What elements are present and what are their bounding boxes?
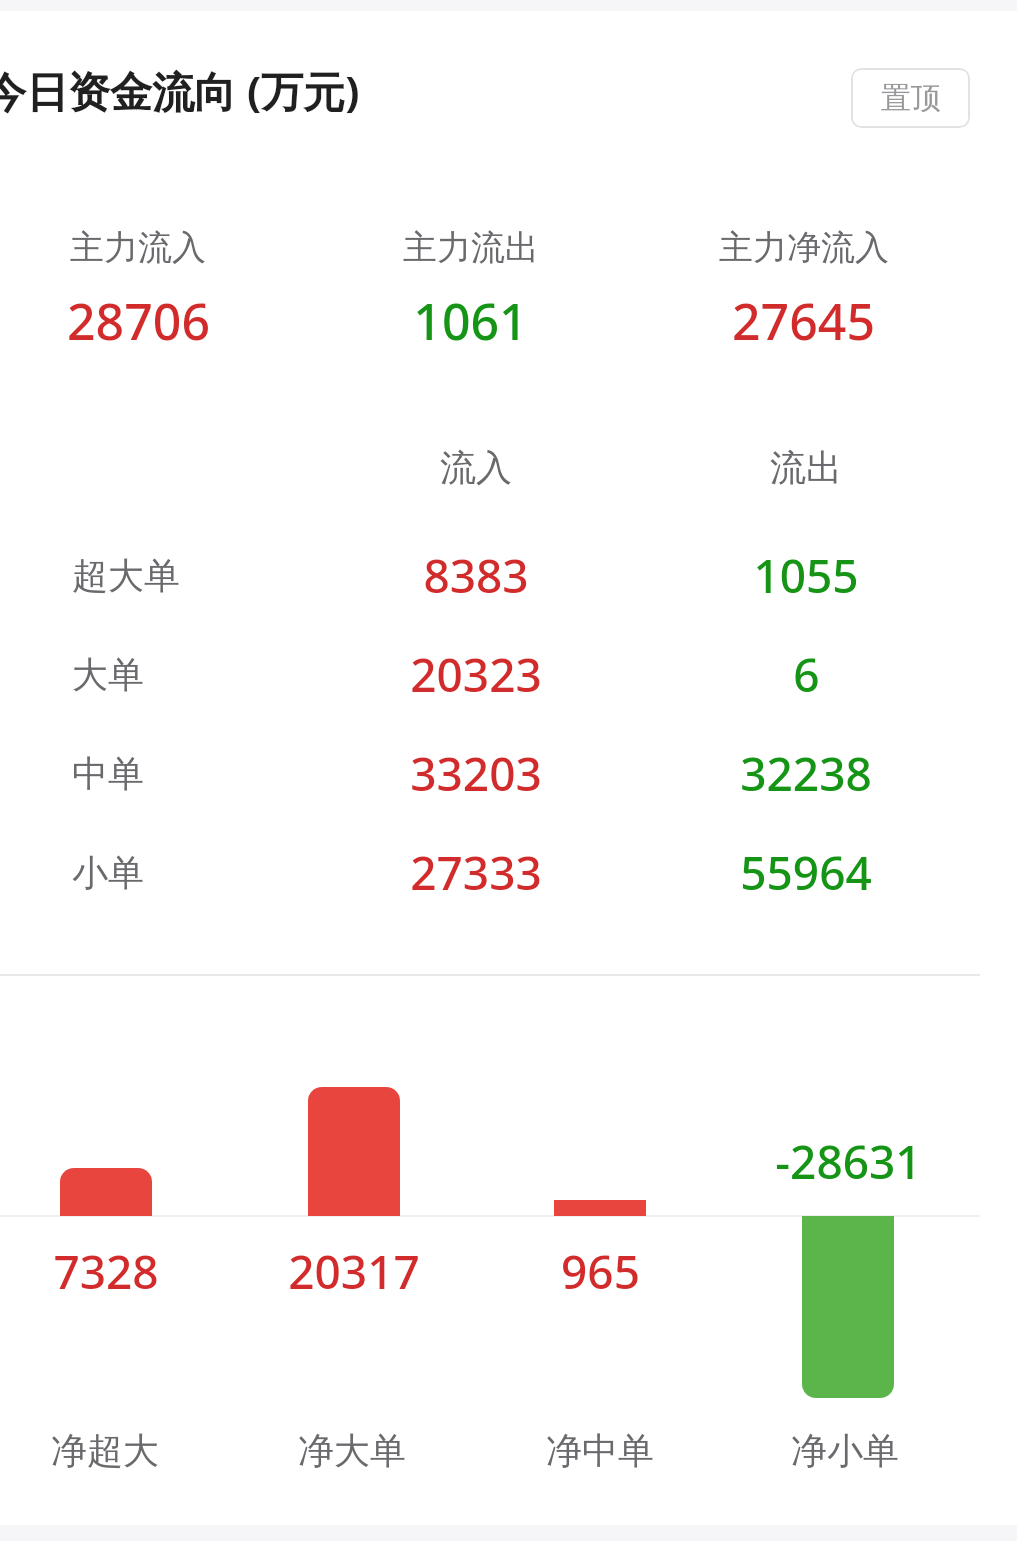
staticText: 32238 — [740, 742, 872, 805]
staticText: 主力流入 — [70, 226, 206, 269]
staticText: 净中单 — [546, 1428, 654, 1473]
staticText: 55964 — [740, 841, 872, 904]
staticText: 大单 — [72, 652, 144, 697]
staticText: -28631 — [775, 1130, 922, 1193]
staticText: 20323 — [410, 643, 542, 706]
staticText: 7328 — [53, 1240, 159, 1303]
staticText: 流出 — [770, 445, 842, 490]
staticText: 置顶 — [881, 79, 941, 117]
button[interactable]: 置顶 — [851, 68, 970, 128]
button[interactable]: 主力流入 — [0, 185, 970, 395]
staticText: 6 — [793, 643, 820, 706]
staticText: 主力流出 — [403, 226, 539, 269]
staticText: 净小单 — [791, 1428, 899, 1473]
staticText: 965 — [561, 1240, 640, 1303]
staticText: 超大单 — [72, 553, 180, 598]
staticText: 20317 — [288, 1240, 420, 1303]
staticText: 今日资金流向 (万元) — [0, 62, 360, 119]
staticText: 27333 — [410, 841, 542, 904]
staticText: 1061 — [413, 287, 528, 355]
staticText: 净大单 — [298, 1428, 406, 1473]
staticText: 主力净流入 — [719, 226, 889, 269]
button[interactable]: 小单 — [0, 837, 1017, 907]
staticText: 28706 — [67, 287, 210, 355]
button[interactable]: 中单 — [0, 738, 1017, 808]
staticText: 净超大 — [51, 1428, 159, 1473]
staticText: 流入 — [440, 445, 512, 490]
staticText: 33203 — [410, 742, 542, 805]
button[interactable]: 大单 — [0, 639, 1017, 709]
staticText: 小单 — [72, 850, 144, 895]
staticText: 8383 — [423, 544, 529, 607]
staticText: 27645 — [732, 287, 875, 355]
button[interactable]: 超大单 — [0, 540, 1017, 610]
staticText: 1055 — [753, 544, 859, 607]
staticText: 中单 — [72, 751, 144, 796]
